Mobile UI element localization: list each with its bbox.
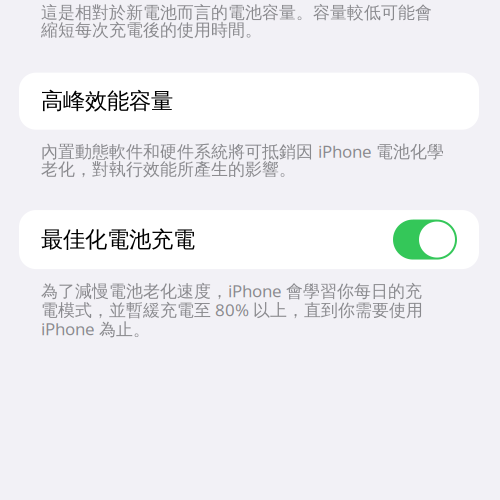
staticText: 內置動態軟件和硬件系統將可抵銷因 iPhone 電池化學 老化，對執行效能所產生… <box>41 140 444 180</box>
staticText: 這是相對於新電池而言的電池容量。容量較低可能會 縮短每次充電後的使用時間。 <box>41 2 432 41</box>
staticText: 高峰效能容量 <box>41 87 173 115</box>
staticText: 為了減慢電池老化速度，iPhone 會學習你每日的充 電模式，並暫緩充電至 80… <box>41 279 423 340</box>
button[interactable]: 最佳化電池充電 <box>19 210 479 269</box>
button[interactable]: 高峰效能容量 <box>19 73 479 130</box>
staticText: 最佳化電池充電 <box>41 225 195 254</box>
